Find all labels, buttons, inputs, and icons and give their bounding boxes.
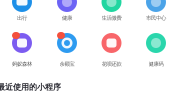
button[interactable]: 市民中心 xyxy=(143,0,169,15)
button[interactable]: 健康码 xyxy=(143,30,169,56)
staticText: 健康 xyxy=(62,15,72,21)
staticText: 余额宝 xyxy=(59,61,74,67)
staticText: 健康码 xyxy=(148,61,163,67)
button[interactable]: 花呗还款 xyxy=(98,30,124,56)
button[interactable]: 出行 xyxy=(9,0,35,15)
staticText: 蚂蚁森林 xyxy=(12,61,32,67)
staticText: 生活缴费 xyxy=(101,15,121,21)
staticText: 出行 xyxy=(17,15,27,21)
button[interactable]: 健康 xyxy=(54,0,80,15)
staticText: 花呗还款 xyxy=(101,61,121,67)
button[interactable]: 生活缴费 xyxy=(98,0,124,15)
staticText: 市民中心 xyxy=(146,15,166,21)
button[interactable]: 蚂蚁森林 xyxy=(9,30,35,56)
button[interactable]: 余额宝 xyxy=(54,30,80,56)
staticText: 最近使用的小程序 xyxy=(0,82,61,92)
